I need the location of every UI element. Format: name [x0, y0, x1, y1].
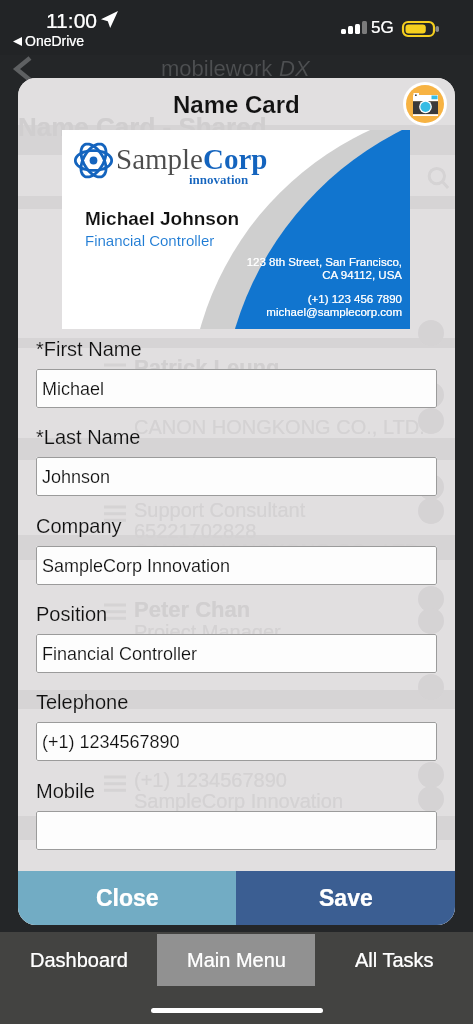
button[interactable]: All Tasks — [315, 934, 473, 986]
staticText: Dashboard — [30, 949, 128, 971]
staticText: 123 8th Street, San Francisco, — [246, 256, 402, 269]
staticText: Financial Controller — [85, 232, 215, 249]
button[interactable]: Close — [18, 871, 236, 925]
button[interactable]: SampleCorp Innovation — [36, 546, 437, 585]
staticText: Mobile — [36, 780, 95, 802]
button[interactable]: Save — [236, 871, 455, 925]
staticText: All Tasks — [355, 949, 434, 971]
staticText: Name Card — [173, 91, 300, 118]
staticText: CANON HONGKONG CO., LTD. — [134, 416, 425, 438]
button[interactable]: Michael — [36, 369, 437, 408]
staticText: Support Consultant — [134, 499, 306, 521]
staticText: Position — [36, 603, 108, 625]
staticText: SampleCorp Innovation — [42, 556, 231, 576]
staticText: CANON HONGKONG CO., LTD. — [134, 540, 425, 562]
staticText: 65221702828 — [134, 520, 257, 542]
staticText: OneDrive — [25, 33, 85, 49]
staticText: Sample — [116, 143, 203, 175]
staticText: *First Name — [36, 338, 142, 360]
staticText: Patrick Leung — [134, 355, 280, 380]
staticText: Project Manager — [134, 621, 281, 643]
staticText: Peter Chan — [134, 597, 251, 622]
staticText: Company — [36, 515, 122, 537]
staticText: (+1) 123 456 7890 — [307, 293, 402, 306]
staticText: Name Card - Shared — [18, 112, 267, 141]
staticText: *Last Name — [36, 426, 141, 448]
button[interactable]: Johnson — [36, 457, 437, 496]
staticText: Telephone — [36, 691, 129, 713]
staticText: mobilework — [161, 56, 273, 81]
button[interactable]: (+1) 1234567890 — [36, 722, 437, 761]
staticText: Michael Johnson — [85, 208, 240, 229]
button[interactable] — [36, 811, 437, 850]
staticText: CA 94112, USA — [322, 269, 402, 282]
button[interactable]: Take photo — [406, 85, 444, 123]
staticText: Corp — [203, 143, 268, 175]
staticText: michael@samplecorp.com — [266, 306, 402, 319]
staticText: Main Menu — [187, 949, 286, 971]
staticText: Close — [96, 885, 159, 911]
staticText: Financial Controller — [42, 644, 198, 664]
staticText: DX — [279, 56, 310, 81]
staticText: SampleCorp Innovation — [134, 790, 344, 812]
button[interactable]: Main Menu — [157, 934, 315, 986]
staticText: Johnson — [42, 467, 111, 487]
staticText: (+1) 1234567890 — [42, 732, 180, 752]
button[interactable]: Dashboard — [0, 934, 157, 986]
staticText: 5G — [371, 18, 394, 37]
staticText: 11:00 — [46, 9, 97, 32]
staticText: Michael — [42, 379, 105, 399]
staticText: (+1) 1234567890 — [134, 769, 287, 791]
staticText: innovation — [189, 172, 249, 186]
button[interactable]: Financial Controller — [36, 634, 437, 673]
staticText: Save — [319, 885, 373, 911]
